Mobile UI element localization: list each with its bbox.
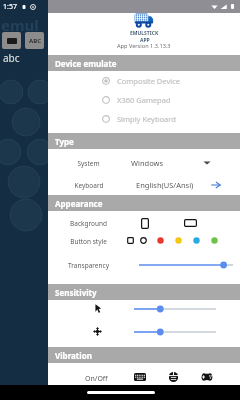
- button[interactable]: Mouse: [168, 372, 179, 382]
- button[interactable]: Device emulate: [48, 55, 240, 71]
- button[interactable]: Select system: [203, 159, 211, 167]
- button[interactable]: Vibration: [48, 347, 240, 363]
- button[interactable]: Gamepad: [200, 372, 214, 382]
- staticText: 1:57: [3, 2, 17, 12]
- button[interactable]: Type: [48, 133, 240, 149]
- button[interactable]: Keyboard: [133, 372, 146, 382]
- button[interactable]: Red button style: [157, 237, 164, 244]
- staticText: Composite Device: [117, 76, 180, 86]
- button[interactable]: Choose keyboard layout: [211, 180, 221, 190]
- staticText: Vibration: [55, 350, 92, 361]
- staticText: Keyboard: [74, 181, 104, 190]
- button[interactable]: [134, 326, 216, 338]
- staticText: EMULSTICK: [130, 30, 159, 37]
- staticText: System: [77, 159, 100, 168]
- staticText: Windows: [131, 158, 164, 168]
- button[interactable]: Simply Keyboard: [48, 110, 240, 128]
- button[interactable]: Sensitivity: [48, 284, 240, 300]
- button[interactable]: Yellow button style: [175, 237, 182, 244]
- button[interactable]: X360 Gamepad: [48, 91, 240, 109]
- button[interactable]: Landscape background: [183, 216, 198, 230]
- staticText: Appearance: [55, 198, 103, 209]
- staticText: Transparency: [68, 261, 109, 270]
- button[interactable]: Scroll speed: [92, 326, 103, 337]
- staticText: emul: [1, 15, 39, 35]
- button[interactable]: Portrait background: [139, 216, 151, 230]
- staticText: Type: [55, 136, 74, 147]
- button[interactable]: Appearance: [48, 195, 240, 211]
- button[interactable]: Circle button style: [140, 237, 147, 244]
- button[interactable]: Composite Device: [48, 72, 240, 90]
- staticText: Button style: [70, 237, 107, 246]
- button[interactable]: Green button style: [211, 237, 218, 244]
- button[interactable]: Pointer speed: [93, 303, 104, 314]
- staticText: APP: [140, 37, 150, 44]
- button[interactable]: [134, 303, 216, 315]
- staticText: English(US/Ansi): [136, 180, 194, 190]
- staticText: Sensitivity: [55, 287, 97, 298]
- button[interactable]: Square button style: [127, 237, 134, 244]
- staticText: ABC: [29, 37, 41, 45]
- staticText: abc: [3, 51, 20, 65]
- staticText: App Version 1.3.13.3: [117, 42, 171, 50]
- button[interactable]: Blue button style: [193, 237, 200, 244]
- staticText: Background: [70, 219, 107, 228]
- staticText: Simply Keyboard: [117, 114, 176, 124]
- button[interactable]: On/Off: [84, 373, 109, 385]
- button[interactable]: USB: [2, 32, 21, 49]
- staticText: X360 Gamepad: [117, 95, 171, 105]
- staticText: On/Off: [85, 374, 108, 384]
- button[interactable]: ABC: [25, 32, 44, 49]
- staticText: Device emulate: [55, 58, 117, 69]
- button[interactable]: [139, 259, 233, 271]
